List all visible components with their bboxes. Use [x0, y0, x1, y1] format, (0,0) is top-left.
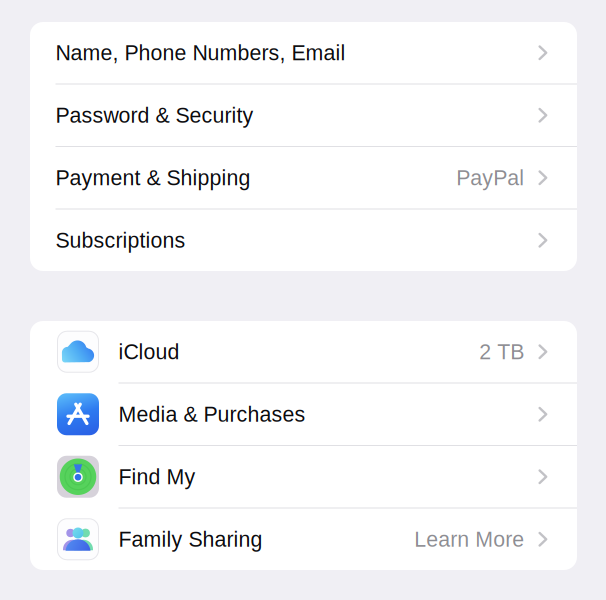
- staticText: Find My: [118, 465, 195, 489]
- button[interactable]: Find My: [30, 446, 577, 507]
- button[interactable]: iCloud: [30, 321, 577, 382]
- staticText: 2 TB: [479, 340, 524, 364]
- staticText: Family Sharing: [118, 527, 262, 551]
- staticText: Password & Security: [55, 103, 253, 127]
- staticText: Name, Phone Numbers, Email: [55, 41, 345, 65]
- staticText: Media & Purchases: [118, 402, 305, 426]
- staticText: Subscriptions: [55, 228, 185, 252]
- button[interactable]: Name, Phone Numbers, Email: [30, 22, 577, 83]
- button[interactable]: Family Sharing: [30, 508, 577, 570]
- button[interactable]: Password & Security: [30, 84, 577, 146]
- button[interactable]: Subscriptions: [30, 209, 577, 271]
- staticText: Learn More: [414, 527, 524, 551]
- staticText: Payment & Shipping: [55, 166, 250, 190]
- button[interactable]: Media & Purchases: [30, 383, 577, 445]
- staticText: iCloud: [118, 340, 179, 364]
- button[interactable]: Payment & Shipping: [30, 147, 577, 208]
- staticText: PayPal: [456, 166, 524, 190]
